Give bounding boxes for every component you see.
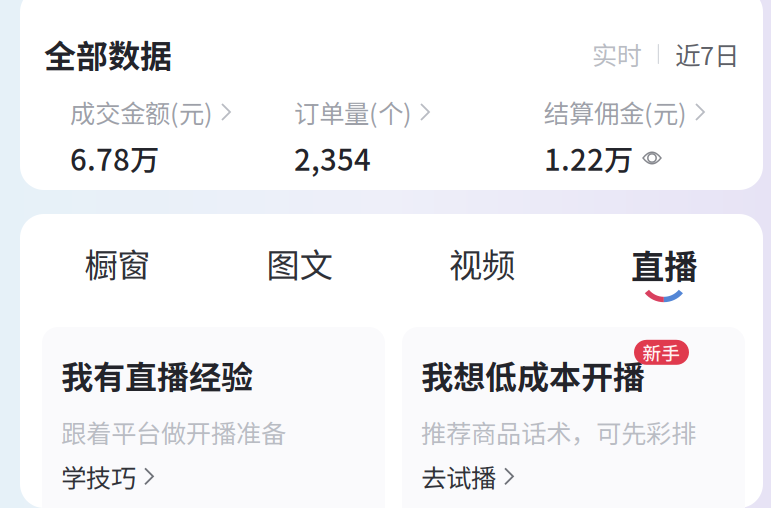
staticText: 近7日 (675, 36, 739, 72)
button[interactable]: 图文 (208, 247, 390, 299)
staticText: 学技巧 (61, 458, 136, 495)
button[interactable]: 实时 (592, 36, 739, 72)
staticText: 结算佣金(元) (544, 94, 687, 130)
button[interactable]: 结算佣金(元) (544, 100, 644, 172)
staticText: 1.22万 (544, 137, 633, 179)
staticText: 跟着平台做开播准备 (61, 414, 286, 450)
staticText: 我想低成本开播 (421, 352, 645, 398)
staticText: 视频 (449, 239, 515, 287)
button[interactable]: 我有直播经验 (42, 327, 385, 508)
staticText: 实时 (592, 36, 642, 72)
staticText: 图文 (266, 239, 332, 287)
button[interactable]: 订单量(个) (294, 100, 544, 172)
staticText: 去试播 (421, 458, 496, 495)
button[interactable]: 成交金额(元) (70, 100, 294, 172)
button[interactable]: 橱窗 (26, 247, 208, 299)
button[interactable]: 视频 (390, 247, 573, 299)
staticText: 我有直播经验 (61, 352, 253, 398)
button[interactable]: 我想低成本开播 (402, 327, 745, 508)
staticText: 橱窗 (84, 239, 150, 287)
staticText: 直播 (631, 240, 697, 289)
staticText: 成交金额(元) (70, 94, 213, 130)
staticText: 2,354 (294, 137, 371, 179)
button[interactable]: 直播 (573, 248, 755, 297)
staticText: 6.78万 (70, 137, 159, 179)
staticText: 订单量(个) (294, 94, 412, 130)
staticText: 全部数据 (44, 31, 172, 77)
staticText: 推荐商品话术，可先彩排 (421, 414, 696, 450)
staticText: 新手 (642, 339, 680, 366)
